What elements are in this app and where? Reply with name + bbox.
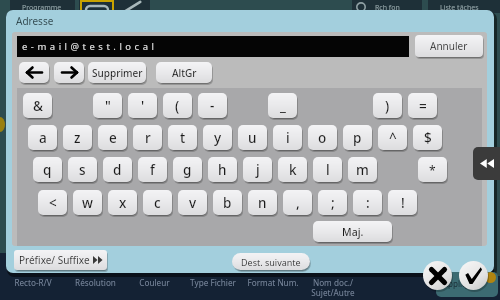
staticText: c (154, 194, 161, 212)
button[interactable]: ( (163, 93, 192, 118)
staticText: w (82, 194, 93, 212)
staticText: = (419, 97, 427, 115)
button[interactable]: a (28, 125, 57, 150)
staticText: l (326, 161, 330, 179)
button[interactable]: y (203, 125, 232, 150)
button[interactable]: d (103, 157, 132, 182)
staticText: d (113, 161, 122, 179)
button[interactable]: Nom doc./ Sujet/Autre (302, 274, 364, 299)
button[interactable]: Appliquer (436, 272, 498, 297)
button[interactable]: x (108, 190, 137, 215)
button[interactable]: m (348, 157, 377, 182)
button[interactable]: Couleur (123, 274, 185, 299)
button[interactable]: Type Fichier (182, 274, 244, 299)
staticText: ! (401, 194, 405, 212)
button[interactable]: j (243, 157, 272, 182)
button[interactable]: , (283, 190, 312, 215)
button[interactable]: r (133, 125, 162, 150)
button[interactable]: l (313, 157, 342, 182)
staticText: j (256, 161, 260, 179)
staticText: Résolution (75, 277, 116, 288)
button[interactable]: AltGr (156, 62, 212, 83)
button[interactable]: = (408, 93, 437, 118)
staticText: Maj. (342, 225, 364, 239)
staticText: q (43, 161, 52, 179)
button[interactable]: - (198, 93, 227, 118)
button[interactable]: Liste tâches (428, 0, 500, 13)
button[interactable]: $ (413, 125, 442, 150)
button[interactable]: Maj. (313, 221, 392, 242)
button[interactable]: g (173, 157, 202, 182)
button[interactable]: w (73, 190, 102, 215)
button[interactable]: s (68, 157, 97, 182)
staticText: s (79, 161, 86, 179)
button[interactable]: Programme (10, 0, 75, 13)
staticText: Adresse (16, 14, 54, 28)
staticText: AltGr (172, 66, 197, 80)
button[interactable]: p (343, 125, 372, 150)
button[interactable]: u (238, 125, 267, 150)
button[interactable]: Scan (80, 0, 114, 13)
staticText: * (429, 162, 436, 178)
button[interactable]: e (98, 125, 127, 150)
button[interactable] (54, 62, 84, 83)
button[interactable]: i (273, 125, 302, 150)
button[interactable]: : (353, 190, 382, 215)
button[interactable]: " (93, 93, 122, 118)
button[interactable]: < (38, 190, 67, 215)
button[interactable] (79, 0, 150, 13)
staticText: Couleur (139, 277, 170, 288)
button[interactable]: Valider (459, 261, 488, 290)
button[interactable]: ! (388, 190, 417, 215)
staticText: Type Fichier (190, 277, 236, 288)
button[interactable]: k (278, 157, 307, 182)
button[interactable]: ; (318, 190, 347, 215)
staticText: v (189, 194, 197, 212)
button[interactable]: ^ (378, 125, 407, 150)
staticText: Supprimer (92, 66, 143, 80)
button[interactable]: z (63, 125, 92, 150)
staticText: Programme (22, 3, 62, 13)
staticText: o (318, 129, 327, 147)
button[interactable]: * (418, 157, 447, 182)
staticText: ( (175, 97, 180, 115)
staticText: z (74, 129, 81, 147)
button[interactable]: Annuler (423, 261, 452, 290)
staticText: b (223, 194, 232, 212)
button[interactable]: f (138, 157, 167, 182)
button[interactable]: Résolution (64, 274, 126, 299)
staticText: ; (331, 194, 335, 212)
button[interactable]: n (248, 190, 277, 215)
button[interactable]: ' (128, 93, 157, 118)
button[interactable]: c (143, 190, 172, 215)
button[interactable]: Format Num. (242, 274, 304, 299)
button[interactable]: Annuler (415, 35, 483, 57)
staticText: k (289, 161, 297, 179)
button[interactable]: v (178, 190, 207, 215)
staticText: Format Num. (247, 277, 299, 288)
staticText: y (214, 129, 222, 147)
staticText: m (356, 161, 369, 179)
button[interactable]: t (168, 125, 197, 150)
staticText: _ (280, 97, 286, 115)
button[interactable]: _ (268, 93, 297, 118)
staticText: a (39, 129, 47, 147)
button[interactable]: o (308, 125, 337, 150)
button[interactable]: & (23, 93, 52, 118)
button[interactable]: b (213, 190, 242, 215)
button[interactable]: Rch fon (352, 0, 422, 13)
button[interactable]: Supprimer (88, 62, 146, 83)
staticText: " (105, 97, 111, 115)
button[interactable]: Préfixe/ Suffixe (14, 250, 107, 270)
staticText: ' (141, 97, 145, 115)
button[interactable] (19, 62, 49, 83)
button[interactable]: q (33, 157, 62, 182)
staticText: ^ (389, 129, 397, 147)
button[interactable]: Previous (473, 147, 500, 180)
staticText: Appliquer (443, 278, 480, 289)
button[interactable]: h (208, 157, 237, 182)
button[interactable]: ) (373, 93, 402, 118)
button[interactable]: Recto-R/V (2, 274, 64, 299)
staticText: Liste tâches (440, 3, 479, 13)
button[interactable]: Dest. suivante (232, 253, 310, 270)
